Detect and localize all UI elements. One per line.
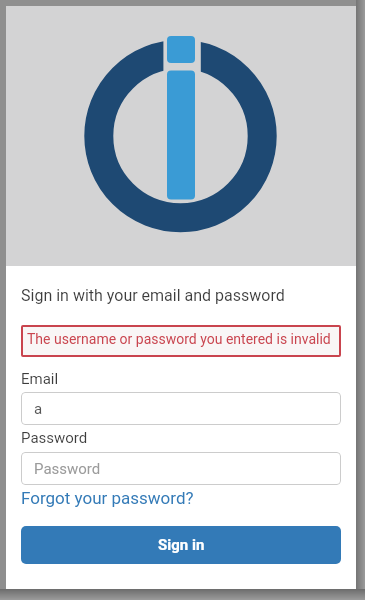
- staticText: The username or password you entered is …: [27, 331, 331, 347]
- button[interactable]: a: [21, 392, 341, 425]
- staticText: Password: [34, 460, 101, 478]
- staticText: Sign in with your email and password: [21, 286, 285, 305]
- button[interactable]: Forgot your password?: [21, 488, 194, 508]
- staticText: a: [34, 400, 43, 418]
- staticText: Email: [21, 370, 59, 388]
- staticText: Password: [21, 429, 88, 447]
- button[interactable]: Sign in: [21, 526, 341, 564]
- staticText: Sign in: [158, 536, 205, 554]
- button[interactable]: Password: [21, 452, 341, 485]
